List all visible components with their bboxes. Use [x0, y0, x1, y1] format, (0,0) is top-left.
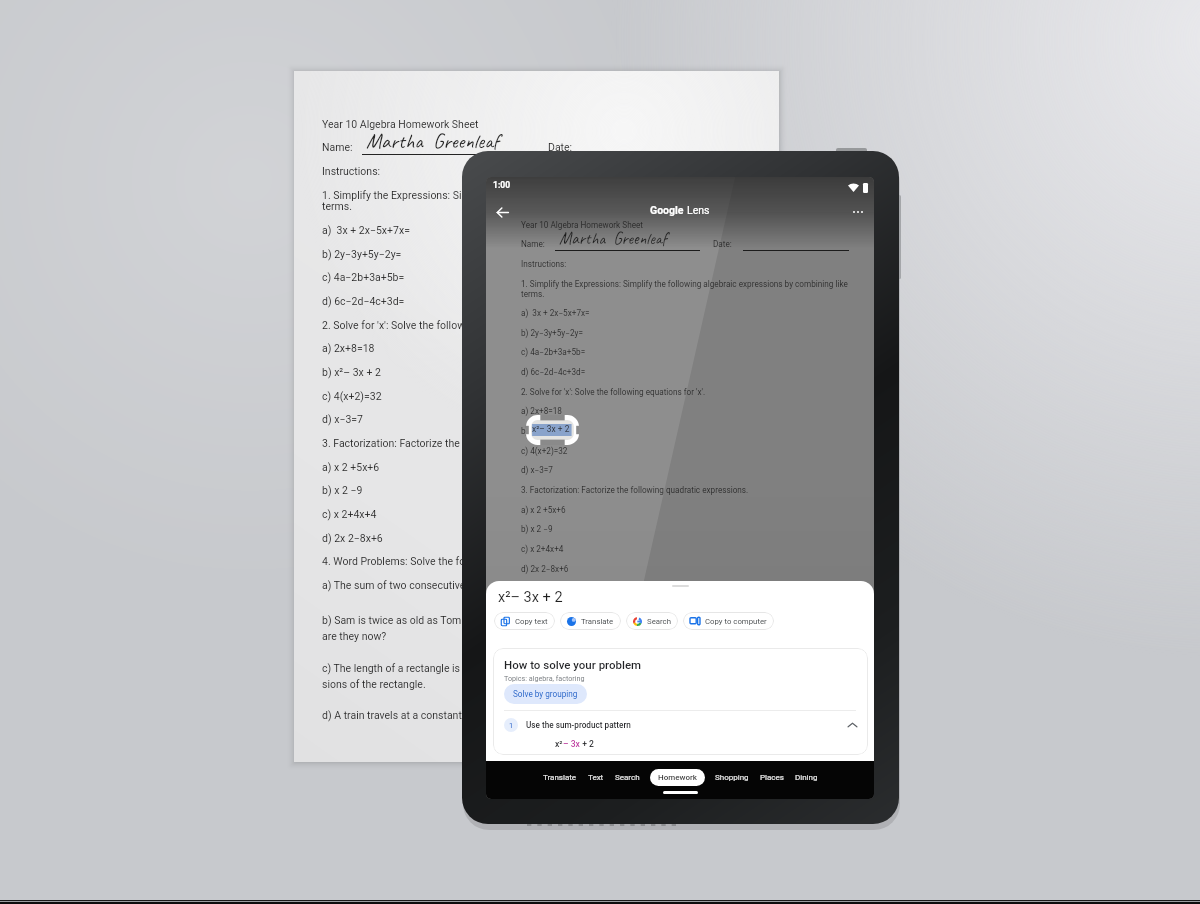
staticText: c) x 2+4x+4: [322, 508, 377, 520]
staticText: Date:: [548, 141, 573, 153]
staticText: Instructions:: [521, 259, 567, 269]
button[interactable]: Collapse step 1: [493, 714, 868, 736]
staticText: a) 2x+8=18: [322, 342, 375, 354]
staticText: Copy to computer: [705, 617, 767, 626]
staticText: 2. Solve for 'x': Solve the following eq…: [521, 387, 706, 397]
button[interactable]: Translate: [560, 612, 621, 630]
staticText: Shopping: [715, 773, 749, 782]
staticText: Text: [588, 773, 604, 782]
staticText: d) 2x 2−8x+6: [521, 564, 569, 574]
staticText: d) 6c−2d−4c+3d=: [521, 367, 586, 377]
staticText: 1: [509, 721, 514, 730]
button[interactable]: Text: [587, 769, 605, 786]
staticText: Translate: [543, 773, 577, 782]
staticText: a) 3x + 2x−5x+7x=: [521, 308, 590, 318]
button[interactable]: Selected text: x squared minus 3x plus 2: [526, 415, 579, 445]
staticText: + 2: [580, 739, 594, 749]
staticText: Martha Greenleaf: [559, 228, 667, 249]
staticText: Search: [647, 617, 671, 626]
staticText: Dining: [795, 773, 818, 782]
staticText: b) x 2 −9: [322, 484, 363, 496]
button[interactable]: More options: [847, 201, 869, 223]
staticText: Use the sum-product pattern: [526, 720, 631, 730]
button[interactable]: Search: [626, 612, 678, 630]
staticText: Topics: algebra, factoring: [504, 674, 585, 682]
staticText: b) Sam is twice as old as Tom. In 5 year…: [322, 614, 628, 643]
staticText: c) 4(x+2)=32: [322, 390, 382, 402]
staticText: a) x 2 +5x+6: [322, 461, 380, 473]
button[interactable]: Copy to computer: [683, 612, 774, 630]
staticText: Copy text: [515, 617, 548, 626]
staticText: Martha Greenleaf: [366, 128, 499, 154]
staticText: d) x−3=7: [322, 413, 363, 425]
staticText: Name:: [521, 239, 545, 249]
staticText: d) A train travels at a constant speed o…: [322, 709, 602, 721]
staticText: x²– 3x + 2: [498, 589, 563, 606]
staticText: c) The length of a rectangle is 3 cm mor…: [322, 662, 639, 691]
staticText: c) x 2+4x+4: [521, 544, 564, 554]
staticText: How to solve your problem: [504, 658, 642, 671]
staticText: a) 2x+8=18: [521, 406, 562, 416]
staticText: Translate: [581, 617, 614, 626]
button[interactable]: Back: [490, 200, 514, 224]
button[interactable]: Shopping: [714, 769, 750, 786]
staticText: b) x²– 3x + 2: [322, 366, 381, 378]
staticText: 3. Factorization: Factorize the followin…: [521, 485, 749, 495]
staticText: Search: [615, 773, 640, 782]
staticText: Places: [760, 773, 784, 782]
staticText: x²– 3x + 2: [532, 424, 570, 434]
button[interactable]: Solve by grouping: [504, 684, 587, 704]
staticText: b) x 2 −9: [521, 524, 553, 534]
staticText: d) 2x 2−8x+6: [322, 532, 383, 544]
staticText: 1. Simplify the Expressions: Simplify th…: [521, 279, 848, 299]
staticText: b) 2y−3y+5y−2y=: [322, 248, 402, 260]
button[interactable]: Copy text: [494, 612, 555, 630]
staticText: Instructions:: [322, 165, 381, 177]
staticText: 1:00: [493, 180, 511, 190]
staticText: Google: [650, 204, 684, 216]
staticText: c) 4(x+2)=32: [521, 446, 568, 456]
staticText: b) x²– 3x + 2: [521, 426, 567, 436]
staticText: d) 6c−2d−4c+3d=: [322, 295, 405, 307]
staticText: Lens: [687, 204, 710, 216]
staticText: x²: [555, 739, 563, 749]
button[interactable]: Homework: [650, 769, 705, 786]
button[interactable]: Places: [759, 769, 785, 786]
button[interactable]: Search: [614, 769, 641, 786]
staticText: Year 10 Algebra Homework Sheet: [521, 220, 644, 230]
staticText: Date:: [713, 239, 732, 249]
staticText: d) x−3=7: [521, 465, 553, 475]
staticText: – 3x: [563, 739, 580, 749]
staticText: Name:: [322, 141, 353, 153]
staticText: 2. Solve for 'x': Solve the following eq…: [322, 319, 559, 331]
staticText: 1. Simplify the Expressions: Simplify th…: [322, 189, 742, 213]
staticText: a) 3x + 2x−5x+7x=: [322, 224, 410, 236]
button[interactable]: Dining: [794, 769, 819, 786]
button[interactable]: Translate: [542, 769, 578, 786]
staticText: b) 2y−3y+5y−2y=: [521, 328, 583, 338]
staticText: c) 4a−2b+3a+5b=: [521, 347, 586, 357]
staticText: a) x 2 +5x+6: [521, 505, 566, 515]
staticText: Year 10 Algebra Homework Sheet: [322, 118, 479, 130]
staticText: c) 4a−2b+3a+5b=: [322, 271, 405, 283]
staticText: Homework: [658, 773, 697, 782]
staticText: Solve by grouping: [513, 689, 578, 699]
staticText: 4. Word Problems: Solve the following wo…: [322, 555, 574, 567]
staticText: a) The sum of two consecutive numbers is…: [322, 579, 624, 591]
staticText: 3. Factorization: Factorize the followin…: [322, 437, 614, 449]
